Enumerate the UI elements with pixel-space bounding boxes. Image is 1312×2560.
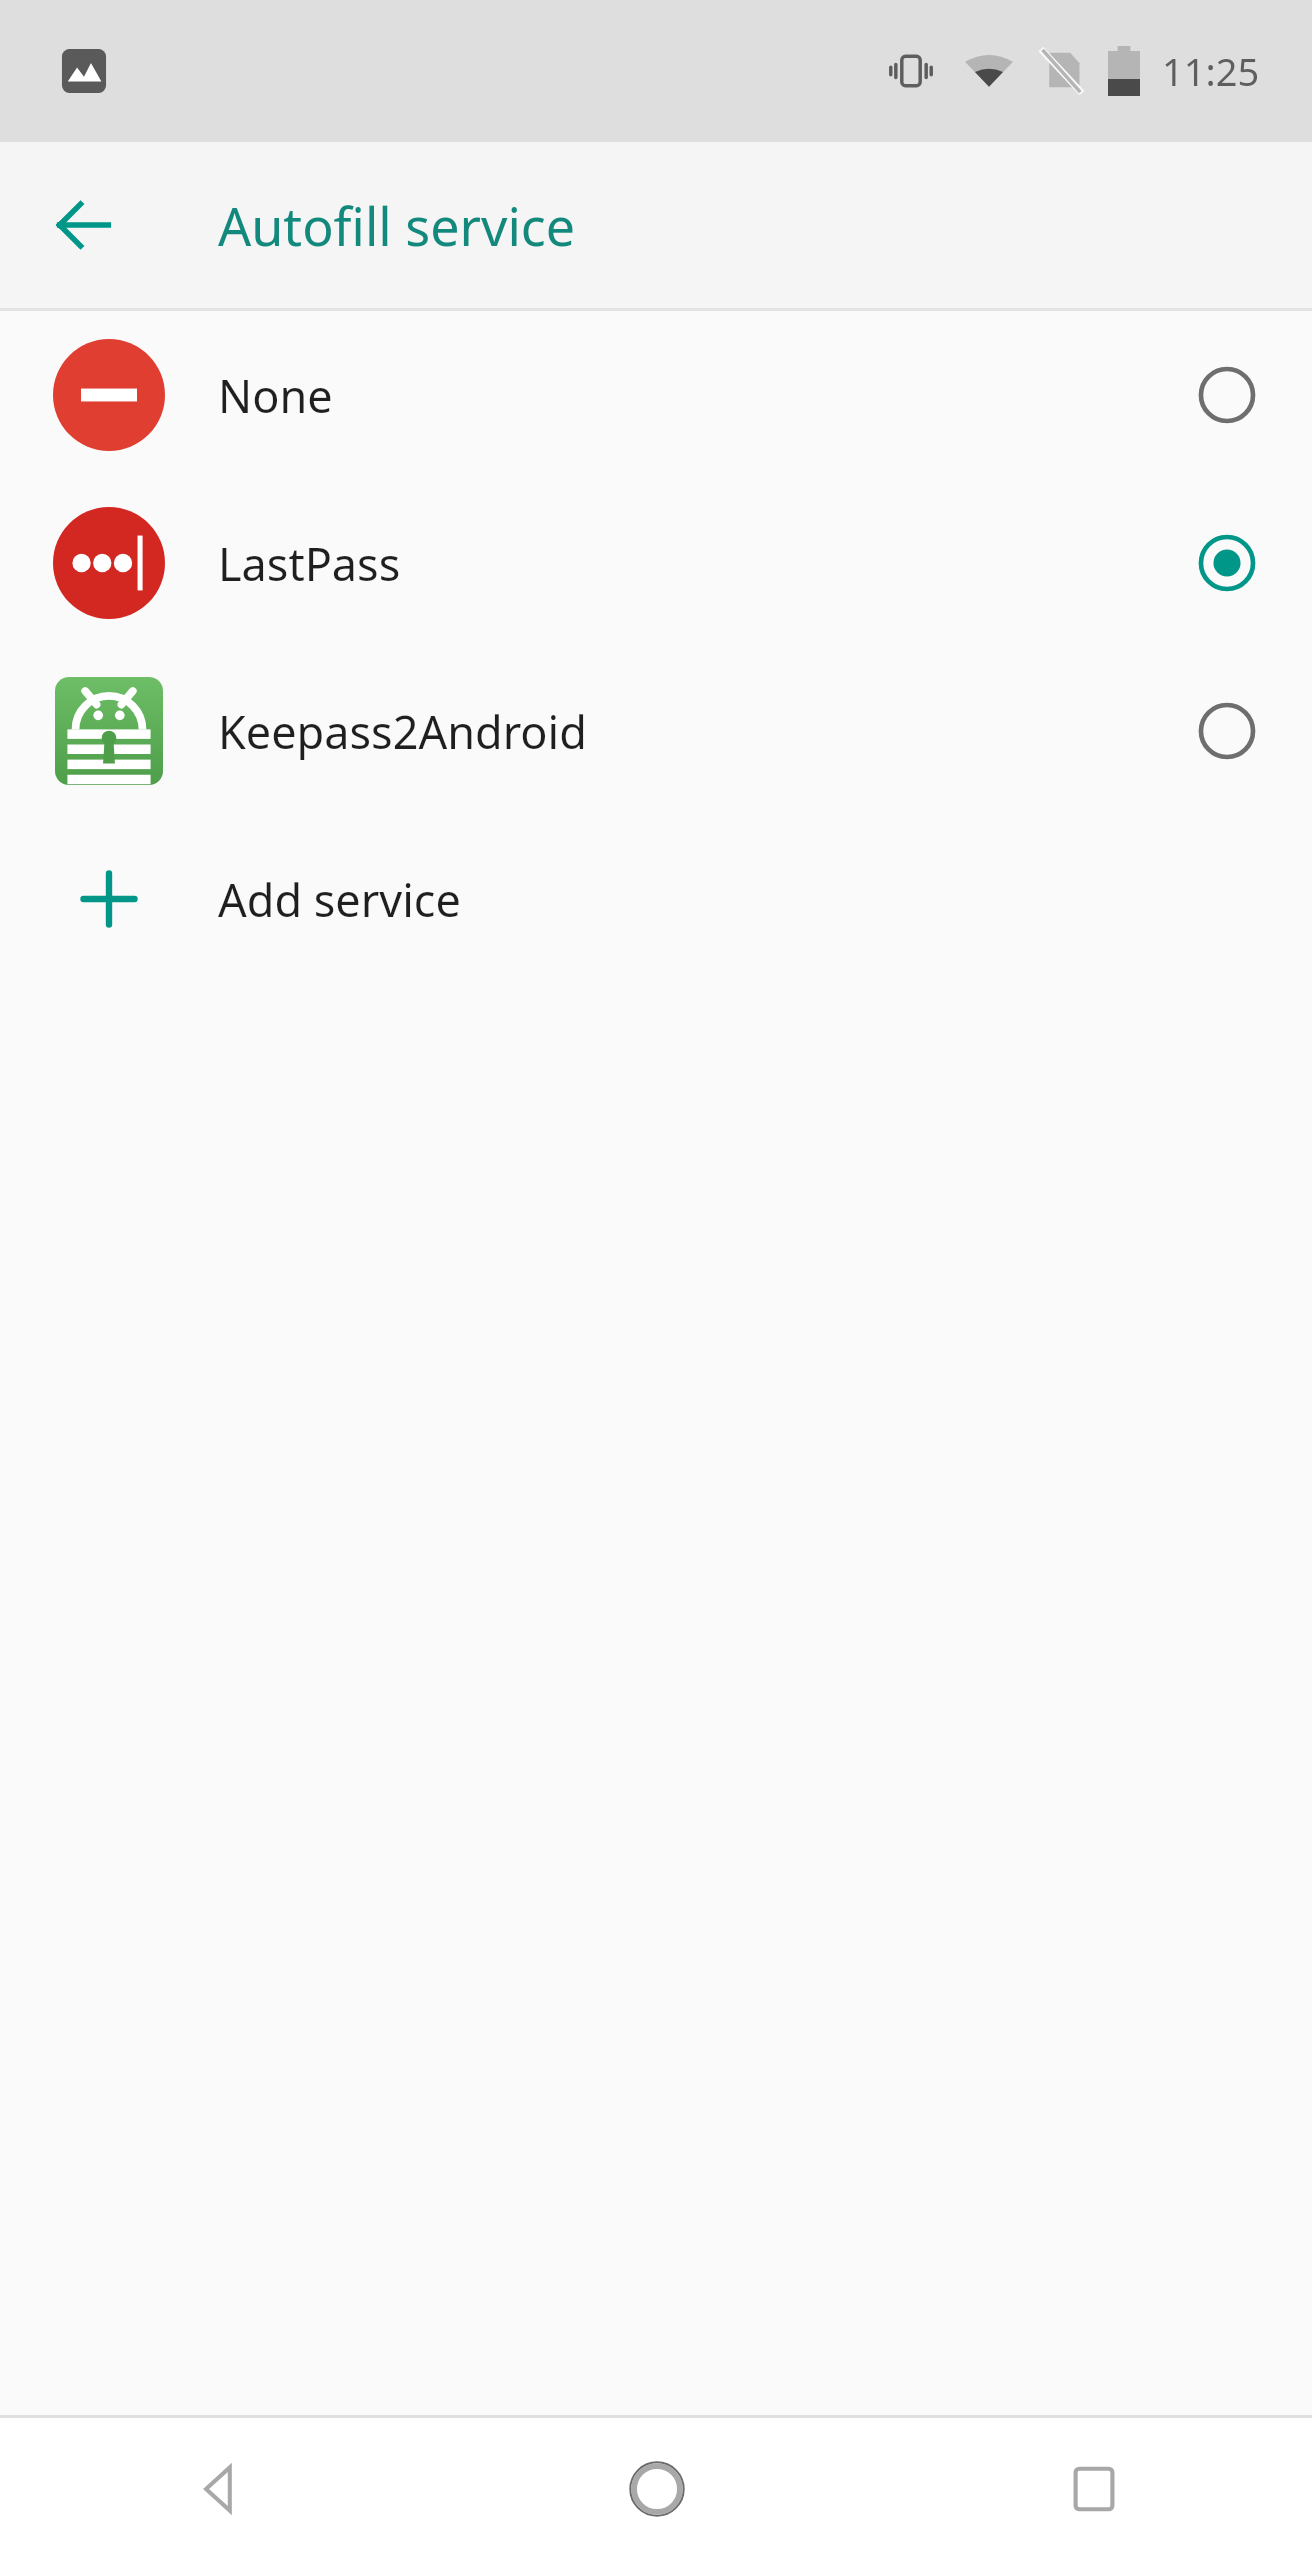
staticText: Keepass2Android [218,701,1142,762]
staticText: Add service [218,869,1142,930]
button[interactable]: Back [30,171,138,279]
button[interactable]: Keepass2Android [0,647,1312,815]
staticText: 11:25 [1162,45,1260,97]
button[interactable]: LastPass [0,479,1312,647]
button[interactable]: Home [438,2418,875,2560]
button[interactable]: Back [0,2418,438,2560]
staticText: None [218,365,1142,426]
button[interactable]: None [0,311,1312,479]
staticText: LastPass [218,533,1142,594]
staticText: Autofill service [218,190,576,261]
button[interactable]: Add service [0,815,1312,983]
button[interactable]: Recent apps [875,2418,1312,2560]
